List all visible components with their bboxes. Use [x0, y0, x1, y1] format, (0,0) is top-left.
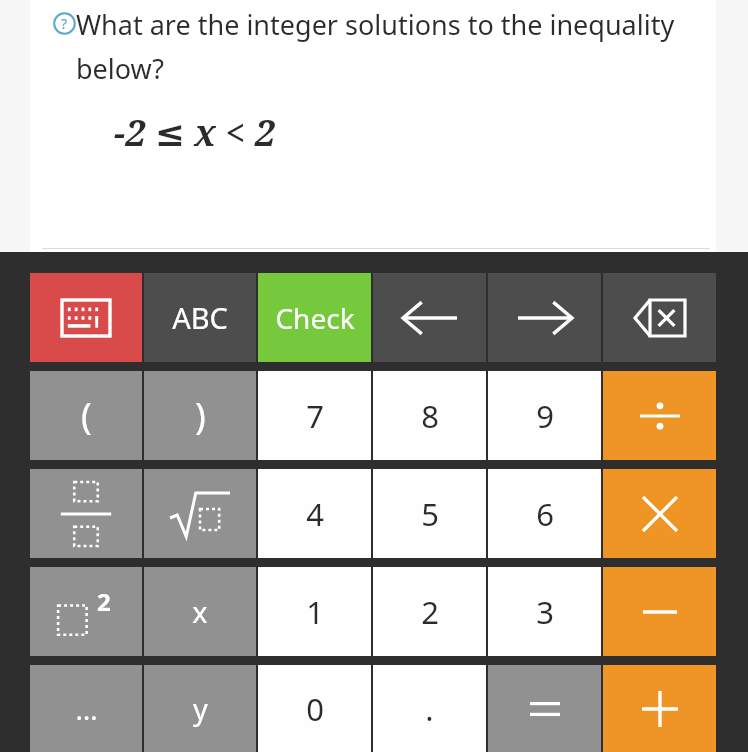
button[interactable]: 2: [373, 567, 486, 656]
button[interactable]: Square root: [144, 469, 256, 558]
button[interactable]: Equals: [488, 665, 601, 752]
button[interactable]: .: [373, 665, 486, 752]
button[interactable]: Minus: [603, 567, 716, 656]
button[interactable]: 4: [258, 469, 371, 558]
button[interactable]: 7: [258, 371, 371, 460]
button[interactable]: 8: [373, 371, 486, 460]
staticText: 2: [421, 591, 439, 633]
staticText: 6: [536, 493, 554, 535]
staticText: 1: [306, 591, 324, 633]
button[interactable]: Check: [258, 273, 371, 362]
button[interactable]: 9: [488, 371, 601, 460]
staticText: 4: [306, 493, 324, 535]
staticText: 2: [97, 585, 111, 618]
staticText: ?: [61, 14, 68, 33]
staticText: ): [195, 391, 206, 440]
button[interactable]: Move right: [488, 273, 601, 362]
button[interactable]: y: [144, 665, 256, 752]
button[interactable]: 6: [488, 469, 601, 558]
staticText: 3: [536, 591, 554, 633]
button[interactable]: ABC: [144, 273, 256, 362]
staticText: −2 ≤ x < 2: [114, 108, 275, 157]
button[interactable]: 5: [373, 469, 486, 558]
button[interactable]: …: [30, 665, 142, 752]
staticText: Check: [275, 299, 355, 337]
staticText: x: [192, 592, 208, 631]
button[interactable]: Exponent: [30, 567, 142, 656]
staticText: What are the integer solutions to the in…: [76, 6, 704, 86]
button[interactable]: Backspace: [603, 273, 716, 362]
button[interactable]: Plus: [603, 665, 716, 752]
button[interactable]: 0: [258, 665, 371, 752]
button[interactable]: Multiply: [603, 469, 716, 558]
staticText: ABC: [172, 298, 228, 337]
button[interactable]: (: [30, 371, 142, 460]
staticText: …: [75, 690, 98, 728]
button[interactable]: x: [144, 567, 256, 656]
staticText: 7: [306, 395, 324, 437]
staticText: 9: [536, 395, 554, 437]
button[interactable]: ): [144, 371, 256, 460]
button[interactable]: 1: [258, 567, 371, 656]
staticText: 5: [421, 493, 439, 535]
staticText: .: [425, 688, 434, 730]
button[interactable]: Divide: [603, 371, 716, 460]
staticText: y: [193, 689, 208, 728]
button[interactable]: Fraction: [30, 469, 142, 558]
staticText: 0: [306, 688, 324, 730]
staticText: (: [81, 391, 92, 440]
staticText: 8: [421, 395, 439, 437]
button[interactable]: Move left: [373, 273, 486, 362]
button[interactable]: Keyboard: [30, 273, 142, 362]
button[interactable]: 3: [488, 567, 601, 656]
